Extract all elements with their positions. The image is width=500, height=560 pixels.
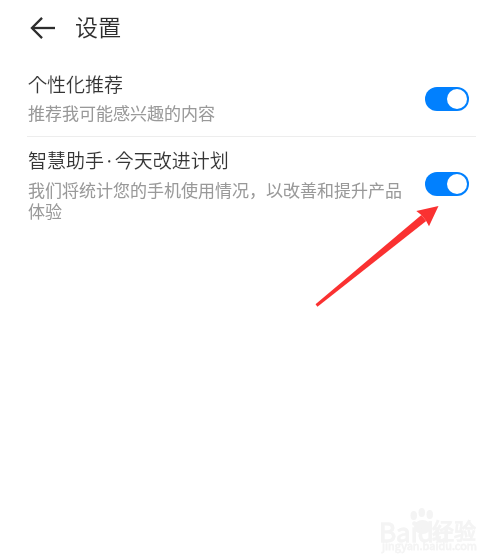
button[interactable]: 个性化推荐 [0,60,500,136]
staticText: 智慧助手·今天改进计划 [28,146,229,174]
staticText: 设置 [75,9,121,42]
staticText: 经验 [432,513,477,545]
staticText: 我们将统计您的手机使用情况，以改善和提升产品体验 [28,177,410,223]
staticText: jingyan.baidu.com [382,537,478,553]
button[interactable]: Toggle switch on [425,87,469,111]
staticText: 推荐我可能感兴趣的内容 [28,100,215,125]
button[interactable]: Back [19,4,67,52]
button[interactable]: Toggle switch on [425,172,469,196]
staticText: Baidu [379,512,450,550]
staticText: 个性化推荐 [28,70,124,98]
button[interactable]: 智慧助手·今天改进计划 [0,137,500,231]
